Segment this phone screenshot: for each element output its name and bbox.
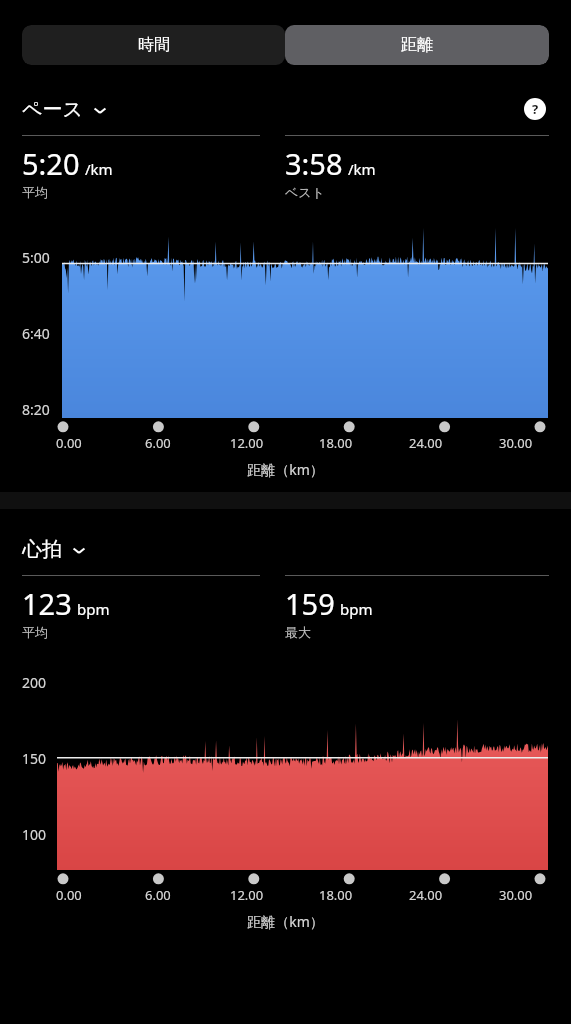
button[interactable]: Help: [522, 96, 548, 122]
staticText: 距離: [401, 35, 433, 55]
staticText: 平均: [22, 624, 48, 640]
staticText: ペース: [22, 97, 83, 122]
staticText: 6:40: [22, 324, 50, 343]
staticText: 5:00: [22, 248, 50, 267]
staticText: 30.00: [499, 434, 533, 452]
staticText: bpm: [77, 599, 110, 619]
staticText: bpm: [340, 599, 373, 619]
button[interactable]: 心拍: [20, 533, 89, 566]
staticText: 100: [22, 825, 47, 844]
staticText: 8:20: [22, 400, 50, 418]
staticText: 6.00: [145, 886, 171, 904]
staticText: /km: [348, 159, 376, 179]
staticText: 時間: [138, 35, 170, 55]
staticText: /km: [85, 159, 113, 179]
staticText: 159: [285, 584, 335, 623]
staticText: 5:20: [22, 144, 80, 183]
staticText: 30.00: [499, 886, 533, 904]
staticText: 3:58: [285, 144, 343, 183]
staticText: 123: [22, 584, 72, 623]
staticText: 6.00: [145, 434, 171, 452]
staticText: 0.00: [56, 434, 82, 452]
staticText: 150: [22, 749, 47, 768]
staticText: ?: [532, 100, 539, 118]
staticText: 平均: [22, 184, 48, 200]
staticText: 距離（km）: [247, 912, 324, 931]
staticText: ベスト: [285, 184, 325, 200]
staticText: 24.00: [409, 434, 443, 452]
staticText: 距離（km）: [247, 460, 324, 479]
button[interactable]: 距離: [285, 25, 549, 65]
staticText: 24.00: [409, 886, 443, 904]
staticText: 18.00: [319, 886, 353, 904]
staticText: 12.00: [230, 886, 264, 904]
button[interactable]: 時間: [22, 25, 285, 65]
staticText: 200: [22, 673, 47, 692]
staticText: 0.00: [56, 886, 82, 904]
staticText: 18.00: [319, 434, 353, 452]
staticText: 心拍: [22, 537, 62, 562]
staticText: 12.00: [230, 434, 264, 452]
staticText: 最大: [285, 624, 311, 640]
button[interactable]: ペース: [20, 93, 110, 126]
